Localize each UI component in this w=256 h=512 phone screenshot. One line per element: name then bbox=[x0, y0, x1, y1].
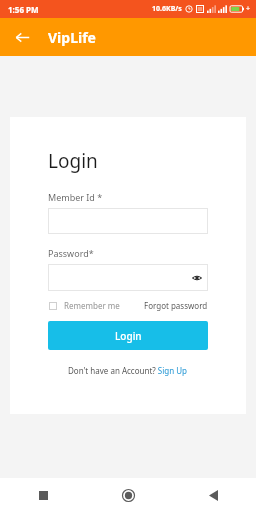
staticText: VipLife bbox=[48, 28, 96, 47]
button[interactable]: Login bbox=[48, 321, 208, 350]
staticText: Forgot password bbox=[144, 300, 208, 311]
staticText: Login bbox=[115, 329, 142, 343]
button[interactable]: Back bbox=[171, 478, 256, 512]
staticText: Member Id * bbox=[48, 191, 103, 203]
button[interactable]: Show password bbox=[48, 264, 208, 291]
staticText: Don't have an Account? Sign Up bbox=[68, 365, 188, 376]
button[interactable]: Recents bbox=[0, 478, 86, 512]
button[interactable]: Show password bbox=[189, 270, 205, 286]
staticText: Login bbox=[48, 148, 98, 174]
staticText: Remember me bbox=[64, 300, 120, 311]
staticText: 10.6KB/s bbox=[152, 4, 182, 14]
button[interactable] bbox=[48, 208, 208, 234]
button[interactable]: Don't have an Account? Sign Up bbox=[68, 365, 188, 376]
staticText: Password* bbox=[48, 247, 94, 259]
staticText: 1:56 PM bbox=[8, 4, 39, 15]
staticText: + bbox=[246, 4, 251, 14]
button[interactable]: Remember me bbox=[48, 300, 120, 311]
button[interactable]: Forgot password bbox=[144, 300, 208, 311]
button[interactable]: Back bbox=[8, 23, 36, 51]
button[interactable]: Home bbox=[86, 478, 171, 512]
